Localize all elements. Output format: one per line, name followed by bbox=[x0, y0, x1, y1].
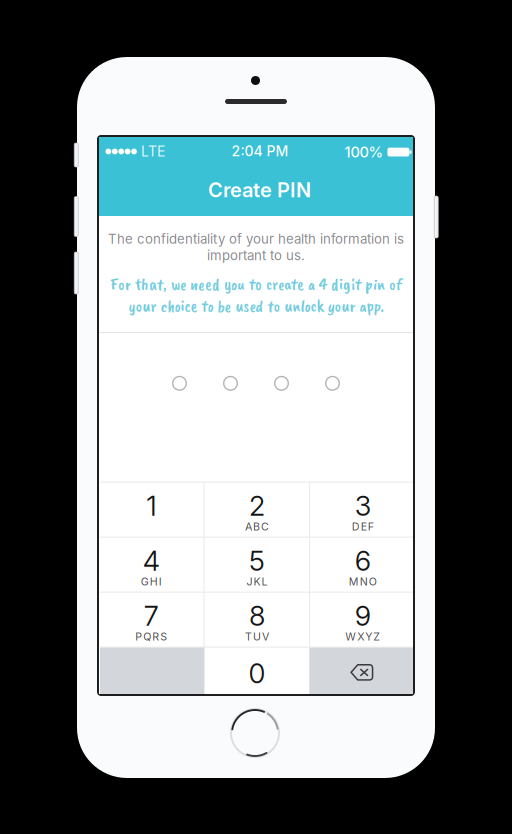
button[interactable]: 5 bbox=[205, 538, 309, 592]
staticText: important to us. bbox=[207, 247, 305, 263]
staticText: 1 bbox=[146, 489, 156, 522]
staticText: 5 bbox=[249, 544, 265, 577]
staticText: ABC bbox=[245, 520, 269, 533]
button[interactable]: 6 bbox=[310, 538, 415, 592]
button[interactable]: 7 bbox=[99, 593, 204, 647]
staticText: PQRS bbox=[135, 630, 167, 643]
button[interactable]: 4 bbox=[99, 538, 204, 592]
staticText: 0 bbox=[248, 657, 265, 690]
button[interactable]: 9 bbox=[310, 593, 415, 647]
staticText: LTE bbox=[141, 143, 165, 160]
staticText: JKL bbox=[246, 575, 267, 588]
staticText: DEF bbox=[352, 520, 374, 533]
staticText: 100% bbox=[344, 143, 383, 161]
button[interactable]: 8 bbox=[205, 593, 309, 647]
button[interactable]: 2 bbox=[205, 483, 309, 537]
staticText: 4 bbox=[143, 544, 160, 577]
staticText: 2:04 PM bbox=[231, 143, 288, 160]
staticText: 6 bbox=[355, 544, 371, 577]
staticText: TUV bbox=[245, 630, 269, 643]
staticText: your choice to be used to unlock your ap… bbox=[128, 295, 383, 317]
staticText: 9 bbox=[355, 599, 371, 632]
button[interactable]: 0 bbox=[205, 648, 309, 697]
button[interactable]: 1 bbox=[99, 483, 204, 537]
staticText: MNO bbox=[349, 575, 377, 588]
staticText: GHI bbox=[141, 575, 162, 588]
button[interactable]: Delete bbox=[309, 648, 414, 697]
staticText: 8 bbox=[249, 599, 265, 632]
staticText: 7 bbox=[144, 599, 159, 632]
staticText: For that, we need you to create a 4 digi… bbox=[110, 273, 402, 295]
staticText: The confidentiality of your health infor… bbox=[108, 231, 404, 247]
staticText: 3 bbox=[355, 489, 371, 522]
staticText: 2 bbox=[249, 489, 265, 522]
button[interactable]: 3 bbox=[310, 483, 415, 537]
staticText: Create PIN bbox=[208, 178, 311, 202]
staticText: WXYZ bbox=[345, 630, 380, 643]
